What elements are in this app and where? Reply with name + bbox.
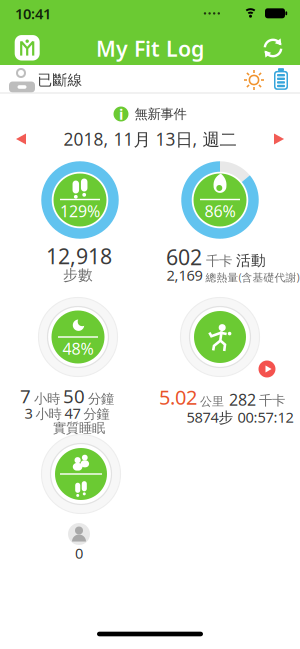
- staticText: 10:41: [15, 4, 51, 23]
- button[interactable]: Previous day: [15, 133, 27, 144]
- button[interactable]: Next day: [273, 133, 285, 144]
- staticText: 實質睡眠: [53, 420, 105, 436]
- staticText: 129%: [60, 200, 100, 222]
- staticText: 2018, 11月 13日, 週二: [63, 127, 236, 150]
- staticText: 千卡: [206, 253, 232, 269]
- staticText: 7: [20, 384, 31, 408]
- button[interactable]: Friends: [68, 523, 90, 545]
- staticText: i: [119, 104, 123, 124]
- staticText: 3: [24, 403, 32, 423]
- staticText: My Fit Log: [96, 34, 204, 63]
- staticText: 步數: [63, 266, 93, 284]
- staticText: 12,918: [46, 242, 112, 270]
- button[interactable]: Calories 86%: [175, 155, 265, 245]
- staticText: 282: [229, 389, 256, 410]
- button[interactable]: Group steps: [36, 429, 126, 519]
- staticText: 小時: [35, 406, 61, 422]
- staticText: 分鐘: [88, 390, 114, 407]
- button[interactable]: Sync: [258, 33, 288, 63]
- staticText: 已斷線: [37, 71, 82, 89]
- staticText: 602: [166, 243, 202, 271]
- staticText: 活動: [236, 252, 266, 270]
- button[interactable]: Steps 129%: [35, 155, 125, 245]
- staticText: 48%: [62, 338, 93, 359]
- button[interactable]: Start activity: [258, 360, 275, 377]
- button[interactable]: i: [113, 103, 186, 125]
- staticText: 5.02: [159, 384, 197, 410]
- button[interactable]: My Fit Log: [10, 31, 44, 65]
- button[interactable]: Sleep 48%: [33, 292, 123, 382]
- staticText: 86%: [204, 200, 235, 222]
- staticText: 公里: [200, 394, 224, 409]
- staticText: 00:57:12: [237, 407, 293, 427]
- staticText: 千卡: [259, 392, 285, 409]
- staticText: 無新事件: [134, 106, 186, 122]
- button[interactable]: 已斷線: [0, 65, 300, 93]
- staticText: 分鐘: [83, 406, 109, 422]
- button[interactable]: Activity: [175, 292, 265, 382]
- staticText: 5874步: [186, 407, 233, 427]
- staticText: 總熱量(含基礎代謝): [205, 270, 299, 284]
- staticText: 2,169: [166, 265, 202, 285]
- staticText: 50: [63, 384, 85, 408]
- staticText: 0: [75, 543, 83, 563]
- staticText: 47: [64, 403, 80, 423]
- staticText: 小時: [34, 390, 60, 407]
